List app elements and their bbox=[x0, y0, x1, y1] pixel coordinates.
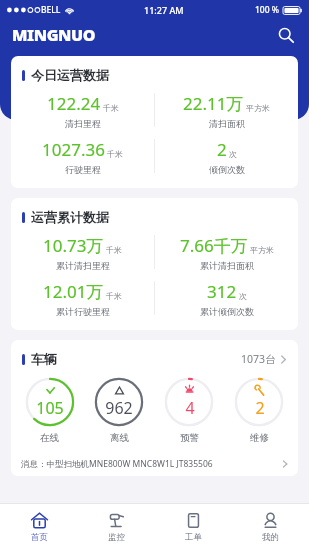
staticText: 12.01万 bbox=[43, 280, 104, 303]
staticText: 平方米 bbox=[246, 103, 270, 113]
staticText: 次 bbox=[229, 149, 237, 159]
staticText: 工单 bbox=[185, 532, 202, 543]
staticText: 11:27 AM bbox=[144, 4, 184, 16]
button[interactable]: 车辆 bbox=[11, 340, 298, 367]
button[interactable]: 105 bbox=[15, 375, 84, 446]
button[interactable]: 首页 bbox=[0, 504, 78, 550]
staticText: 运营累计数据 bbox=[31, 209, 109, 225]
staticText: 清扫里程 bbox=[65, 118, 101, 129]
staticText: BELL bbox=[41, 4, 61, 16]
staticText: 预警 bbox=[180, 432, 199, 444]
staticText: 倾倒次数 bbox=[209, 164, 245, 175]
staticText: 累计清扫里程 bbox=[56, 260, 110, 271]
button[interactable]: 4 bbox=[154, 375, 224, 446]
button[interactable]: 962 bbox=[84, 375, 154, 446]
staticText: 1027.36 bbox=[42, 138, 105, 161]
button[interactable]: 消息：中型扫地机MNE800W MNC8W1L JT835506 bbox=[11, 454, 298, 474]
staticText: 105 bbox=[36, 397, 64, 419]
staticText: 2 bbox=[255, 397, 265, 419]
button[interactable]: 我的 bbox=[232, 504, 309, 550]
staticText: 消息：中型扫地机MNE800W MNC8W1L JT835506 bbox=[21, 458, 213, 470]
staticText: 122.24 bbox=[47, 92, 101, 115]
staticText: 平方米 bbox=[250, 245, 274, 255]
staticText: 次 bbox=[239, 291, 247, 301]
staticText: 100 % bbox=[255, 4, 280, 16]
staticText: 离线 bbox=[110, 432, 129, 444]
staticText: 车辆 bbox=[31, 351, 57, 367]
staticText: MINGNUO bbox=[12, 24, 96, 46]
staticText: 10.73万 bbox=[43, 234, 104, 257]
button[interactable]: Search bbox=[273, 22, 299, 48]
staticText: 行驶里程 bbox=[65, 164, 101, 175]
staticText: 千米 bbox=[103, 103, 119, 113]
staticText: 2 bbox=[217, 138, 227, 161]
button[interactable]: 监控 bbox=[78, 504, 155, 550]
staticText: 千米 bbox=[106, 245, 122, 255]
staticText: 清扫面积 bbox=[209, 118, 245, 129]
staticText: 1073台 bbox=[241, 352, 276, 366]
button[interactable]: 2 bbox=[224, 375, 294, 446]
staticText: 4 bbox=[185, 397, 195, 419]
staticText: 千米 bbox=[106, 291, 122, 301]
staticText: 累计倾倒次数 bbox=[200, 306, 254, 317]
staticText: 312 bbox=[207, 280, 237, 303]
staticText: 今日运营数据 bbox=[31, 67, 109, 83]
staticText: 维修 bbox=[250, 432, 269, 444]
button[interactable]: 工单 bbox=[155, 504, 232, 550]
staticText: 962 bbox=[105, 397, 133, 419]
staticText: 累计清扫面积 bbox=[200, 260, 254, 271]
staticText: 监控 bbox=[108, 532, 125, 543]
staticText: 首页 bbox=[31, 532, 48, 543]
staticText: 累计行驶里程 bbox=[56, 306, 110, 317]
staticText: 千米 bbox=[107, 149, 123, 159]
staticText: 我的 bbox=[262, 532, 279, 543]
staticText: 22.11万 bbox=[183, 92, 244, 115]
staticText: 在线 bbox=[40, 432, 59, 444]
staticText: 7.66千万 bbox=[180, 234, 248, 257]
